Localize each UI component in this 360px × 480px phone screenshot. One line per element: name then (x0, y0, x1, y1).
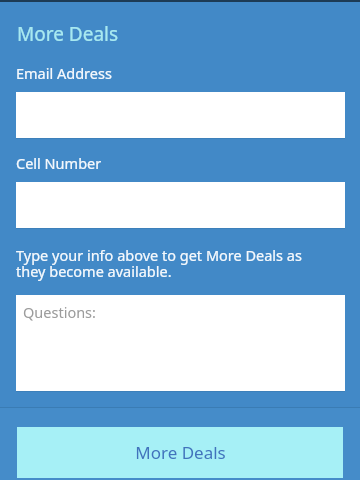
staticText: Cell Number (16, 153, 102, 173)
staticText: Questions: (23, 302, 96, 322)
button[interactable]: Questions: (16, 295, 345, 391)
staticText: More Deals (17, 21, 119, 47)
staticText: More Deals (135, 441, 226, 464)
staticText: Email Address (16, 63, 112, 83)
button[interactable]: More Deals (17, 427, 343, 478)
staticText: Type your info above to get More Deals a… (16, 245, 335, 282)
